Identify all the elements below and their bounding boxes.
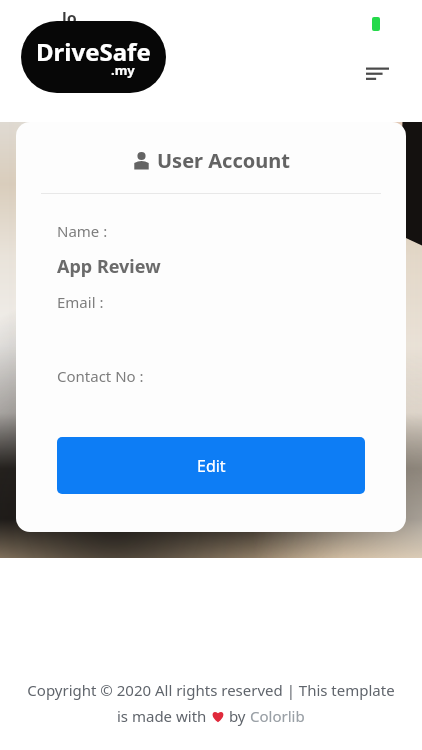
staticText: App Review [57,254,161,279]
staticText: Copyright © 2020 All rights reserved | T… [27,680,395,700]
staticText: is made with [117,706,211,726]
button[interactable]: Colorlib [250,706,305,726]
button[interactable]: Edit [57,437,365,494]
staticText: User Account [157,147,290,174]
staticText: lo [62,7,77,29]
staticText: Email : [57,292,104,312]
staticText: Contact No : [57,366,144,386]
staticText: .my [111,61,135,79]
staticText: by [225,706,250,726]
staticText: Name : [57,221,108,241]
staticText: Edit [197,455,226,477]
button[interactable]: Open navigation menu [356,53,398,95]
button[interactable]: DriveSafe.my home [21,21,166,93]
staticText: DriveSafe [36,35,151,68]
